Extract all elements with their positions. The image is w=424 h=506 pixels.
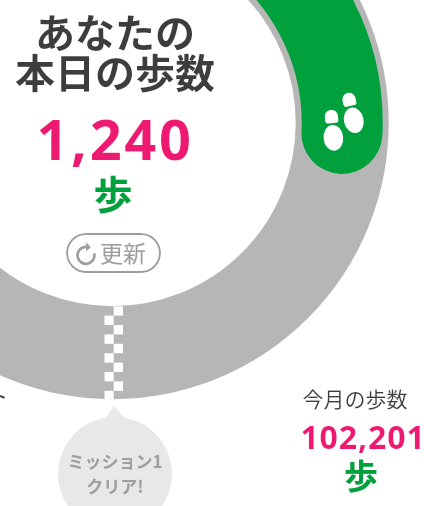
staticText: 102,201: [263, 415, 424, 459]
staticText: 更新: [100, 235, 146, 268]
staticText: 歩: [0, 164, 228, 220]
staticText: ミッション1 クリア!: [55, 448, 175, 498]
staticText: 今月の歩数: [255, 383, 424, 413]
button[interactable]: 更新: [66, 233, 161, 273]
staticText: スタート: [0, 385, 7, 407]
staticText: あなたの 本日の歩数: [0, 2, 230, 99]
staticText: 歩: [261, 450, 424, 499]
staticText: 1,240: [0, 100, 230, 176]
